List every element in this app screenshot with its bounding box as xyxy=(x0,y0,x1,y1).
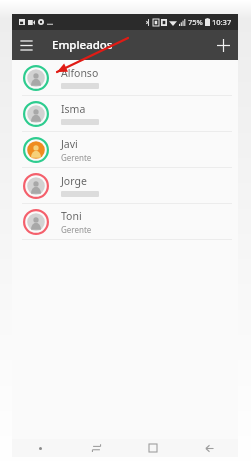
button[interactable]: Menu xyxy=(12,439,68,457)
button[interactable]: Toni xyxy=(12,204,238,239)
staticText: Empleados xyxy=(52,37,113,53)
button[interactable]: Isma xyxy=(12,96,238,131)
button[interactable]: Alfonso xyxy=(12,60,238,95)
button[interactable]: Jorge xyxy=(12,168,238,203)
button[interactable]: Open navigation menu xyxy=(12,31,40,59)
button[interactable]: Switch apps xyxy=(68,439,124,457)
button[interactable]: Javi xyxy=(12,132,238,167)
staticText: 10:37 xyxy=(212,17,232,27)
staticText: 75% xyxy=(188,17,203,27)
staticText: Toni xyxy=(61,209,82,223)
staticText: Isma xyxy=(61,102,86,116)
staticText: Alfonso xyxy=(61,66,99,80)
staticText: Gerente xyxy=(61,152,92,163)
staticText: Gerente xyxy=(61,224,92,235)
staticText: Javi xyxy=(61,137,78,151)
button[interactable]: Back xyxy=(181,439,238,457)
button[interactable]: Add employee xyxy=(208,30,238,60)
button[interactable]: Recent apps xyxy=(124,439,181,457)
staticText: Jorge xyxy=(61,174,87,188)
